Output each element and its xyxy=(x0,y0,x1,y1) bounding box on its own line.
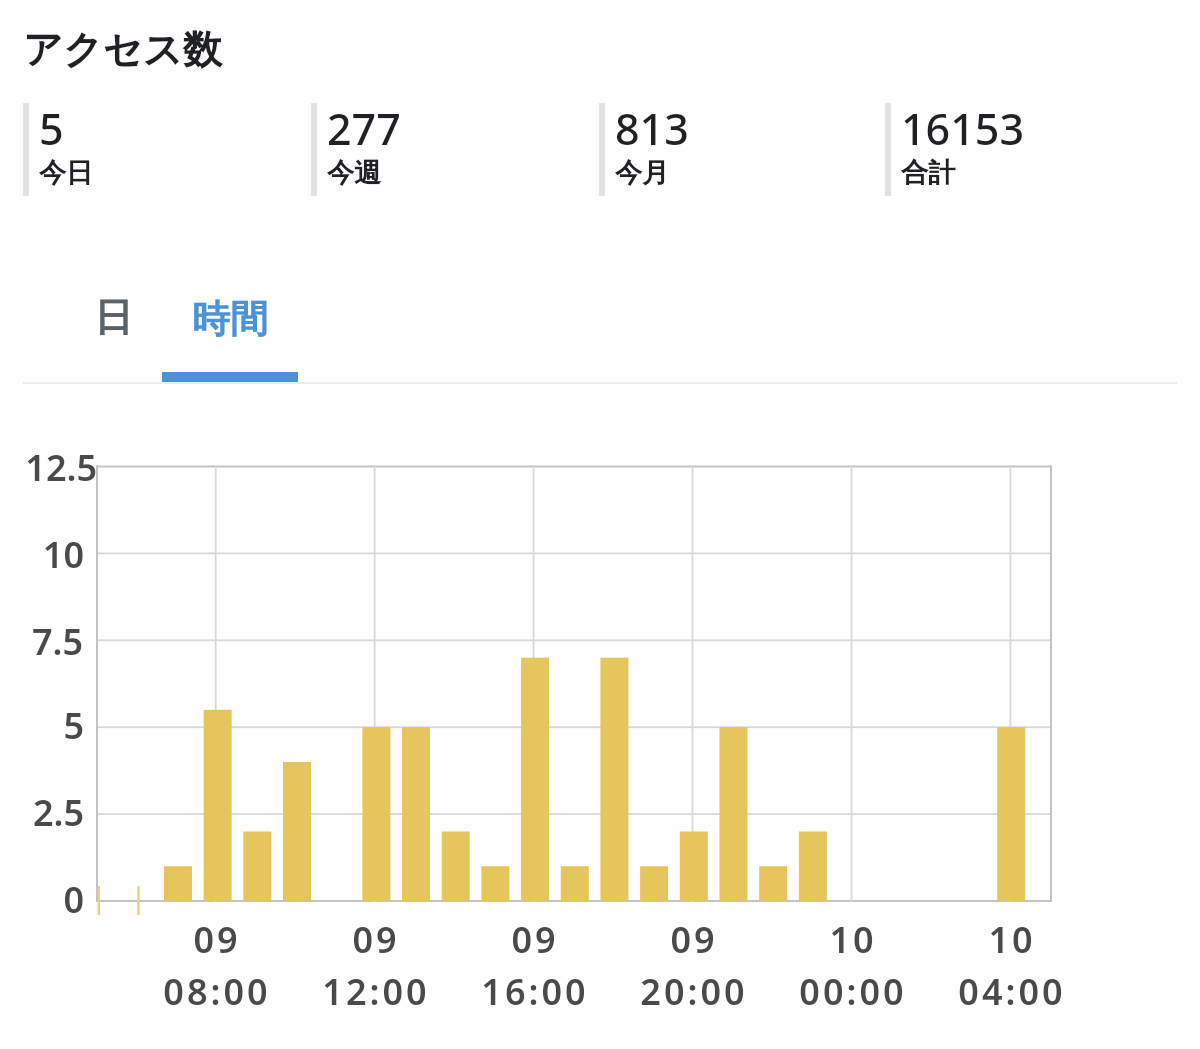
staticText: 09 xyxy=(511,915,559,964)
staticText: 2.5 xyxy=(0,788,84,837)
staticText: 7.5 xyxy=(0,617,83,666)
staticText: 16:00 xyxy=(481,967,589,1016)
other: Hourly access chart xyxy=(0,0,1200,1049)
staticText: 今月 xyxy=(615,156,669,190)
button[interactable]: 5 xyxy=(23,103,293,196)
staticText: 10 xyxy=(0,530,84,579)
staticText: 5 xyxy=(39,99,64,158)
staticText: 合計 xyxy=(901,156,955,190)
staticText: 0 xyxy=(0,875,84,924)
staticText: 09 xyxy=(193,915,241,964)
staticText: 今週 xyxy=(327,156,381,190)
staticText: アクセス数 xyxy=(23,25,222,74)
staticText: 813 xyxy=(615,99,689,158)
staticText: 09 xyxy=(670,915,718,964)
staticText: 日 xyxy=(94,293,133,342)
staticText: 10 xyxy=(988,915,1036,964)
staticText: 10 xyxy=(829,915,877,964)
staticText: 04:00 xyxy=(958,967,1066,1016)
staticText: 00:00 xyxy=(799,967,907,1016)
button[interactable]: 時間 xyxy=(162,288,298,350)
button[interactable]: 16153 xyxy=(885,103,1155,196)
button[interactable]: 813 xyxy=(599,103,869,196)
staticText: 今日 xyxy=(39,156,93,190)
staticText: 16153 xyxy=(901,99,1024,158)
button[interactable]: 日 xyxy=(83,286,143,348)
staticText: 時間 xyxy=(192,295,268,343)
staticText: 20:00 xyxy=(640,967,748,1016)
staticText: 12:00 xyxy=(322,967,430,1016)
staticText: 09 xyxy=(352,915,400,964)
staticText: 08:00 xyxy=(163,967,271,1016)
button[interactable]: 277 xyxy=(311,103,581,196)
staticText: 12.5 xyxy=(0,443,97,492)
staticText: 277 xyxy=(327,99,401,158)
staticText: 5 xyxy=(0,701,84,750)
